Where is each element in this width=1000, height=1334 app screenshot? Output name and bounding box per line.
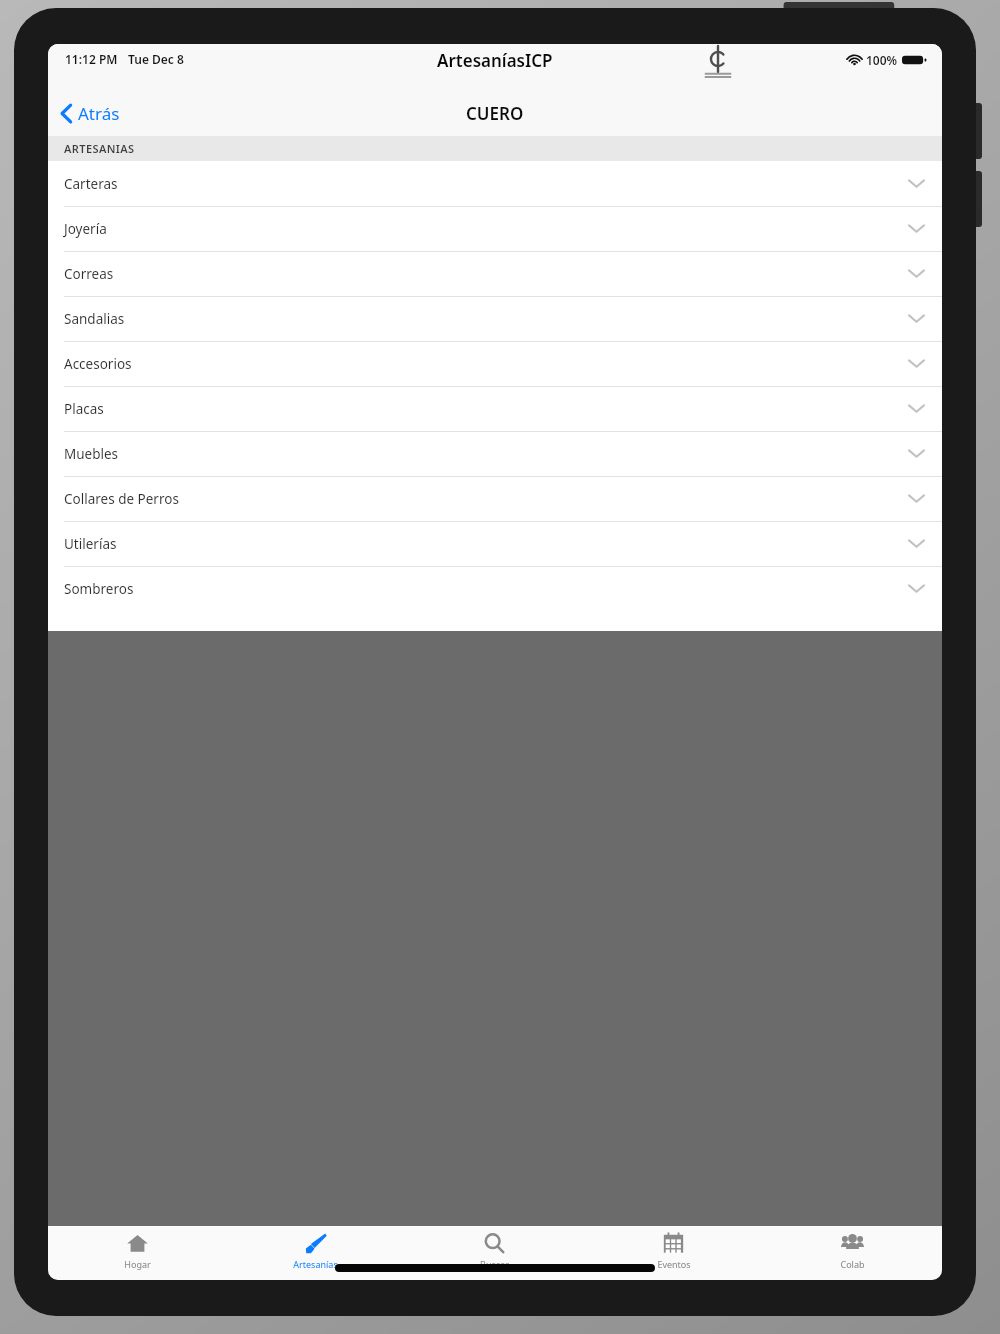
staticText: Carteras [64,175,118,193]
button[interactable]: Accesorios [48,341,942,386]
staticText: Sombreros [64,580,134,598]
staticText: Muebles [64,445,119,463]
button[interactable]: Collares de Perros [48,476,942,521]
other: Hogar [126,1232,149,1255]
staticText: Accesorios [64,355,132,373]
other: Eventos [662,1232,685,1255]
button[interactable]: Sandalias [48,296,942,341]
other: Artesanías [304,1232,327,1255]
staticText: ArtesaníasICP [437,49,553,72]
staticText: 100% [866,52,898,68]
button[interactable]: Hogar [48,1226,226,1280]
button[interactable]: Joyería [48,206,942,251]
staticText: Colab [840,1258,865,1270]
staticText: Utilerías [64,535,117,553]
staticText: Sandalias [64,310,125,328]
button[interactable]: Muebles [48,431,942,476]
button[interactable]: Eventos [584,1226,763,1280]
other: Buscar [483,1232,506,1255]
staticText: Joyería [64,220,107,238]
staticText: Correas [64,265,114,283]
staticText: 11:12 PM [65,51,118,67]
button[interactable]: Sombreros [48,566,942,611]
staticText: ARTESANIAS [64,141,135,156]
staticText: Eventos [657,1258,691,1270]
staticText: Tue Dec 8 [128,51,184,67]
staticText: Hogar [124,1258,151,1270]
staticText: Placas [64,400,104,418]
other: Colab [841,1232,864,1255]
staticText: Artesanías [293,1258,338,1270]
staticText: CUERO [466,102,524,125]
button[interactable]: Buscar [405,1226,584,1280]
staticText: Atrás [78,102,120,125]
button[interactable]: Carteras [48,161,942,206]
button[interactable]: Placas [48,386,942,431]
button[interactable]: Correas [48,251,942,296]
button[interactable]: Utilerías [48,521,942,566]
button[interactable]: Atrás [48,98,132,129]
staticText: Buscar [480,1258,509,1270]
button[interactable]: Artesanías [226,1226,405,1280]
staticText: Collares de Perros [64,490,179,508]
button[interactable]: Colab [763,1226,942,1280]
